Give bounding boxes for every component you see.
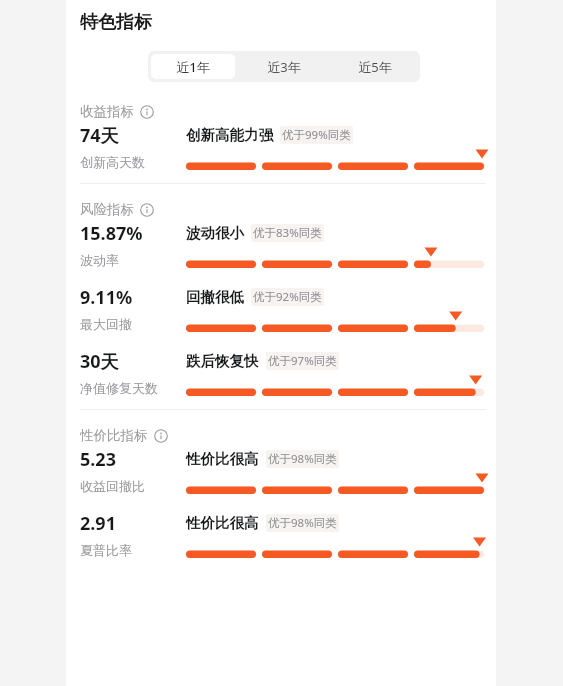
staticText: 回撤很低 <box>186 288 244 306</box>
button[interactable]: 风险指标 <box>80 201 154 218</box>
staticText: 优于98%同类 <box>268 451 337 467</box>
staticText: 波动很小 <box>186 224 244 242</box>
button[interactable]: 2.91 <box>80 511 484 558</box>
button[interactable]: 近5年 <box>332 54 417 79</box>
staticText: 74天 <box>80 123 119 148</box>
button[interactable]: 74天 <box>80 123 484 170</box>
staticText: 收益回撤比 <box>80 478 145 494</box>
staticText: 波动率 <box>80 252 119 268</box>
staticText: 最大回撤 <box>80 316 132 332</box>
staticText: 优于98%同类 <box>268 515 337 531</box>
staticText: 30天 <box>80 349 119 374</box>
staticText: 2.91 <box>80 511 116 536</box>
button[interactable]: 5.23 <box>80 447 484 494</box>
other: 指标说明 <box>140 105 154 119</box>
staticText: 风险指标 <box>80 201 134 218</box>
button[interactable]: 9.11% <box>80 285 484 332</box>
staticText: 特色指标 <box>80 11 152 34</box>
staticText: 跌后恢复快 <box>186 352 259 370</box>
staticText: 9.11% <box>80 285 133 310</box>
staticText: 创新高天数 <box>80 154 145 170</box>
staticText: 近1年 <box>176 58 210 76</box>
staticText: 优于99%同类 <box>282 127 351 143</box>
staticText: 近3年 <box>267 58 301 76</box>
other: 指标说明 <box>140 203 154 217</box>
button[interactable]: 30天 <box>80 349 484 396</box>
button[interactable]: 近1年 <box>151 54 235 79</box>
staticText: 15.87% <box>80 221 143 246</box>
staticText: 收益指标 <box>80 103 134 120</box>
staticText: 5.23 <box>80 447 116 472</box>
staticText: 优于97%同类 <box>268 353 337 369</box>
other: 指标说明 <box>154 429 168 443</box>
staticText: 近5年 <box>358 58 392 76</box>
button[interactable]: 近3年 <box>241 54 326 79</box>
staticText: 夏普比率 <box>80 542 132 558</box>
button[interactable]: 15.87% <box>80 221 484 268</box>
staticText: 性价比指标 <box>80 427 148 444</box>
staticText: 优于83%同类 <box>253 225 322 241</box>
staticText: 性价比很高 <box>186 514 259 532</box>
staticText: 净值修复天数 <box>80 380 158 396</box>
staticText: 创新高能力强 <box>186 126 273 144</box>
staticText: 优于92%同类 <box>253 289 322 305</box>
button[interactable]: 性价比指标 <box>80 427 168 444</box>
staticText: 性价比很高 <box>186 450 259 468</box>
button[interactable]: 收益指标 <box>80 103 154 120</box>
